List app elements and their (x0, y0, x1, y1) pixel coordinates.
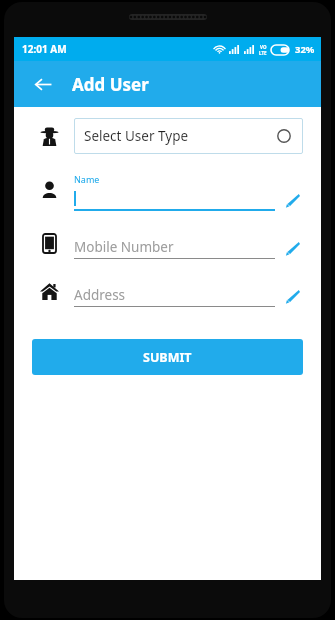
staticText: Add User (72, 73, 149, 96)
button[interactable]: Address (32, 273, 303, 307)
staticText: SUBMIT (143, 349, 192, 366)
button[interactable]: SUBMIT (32, 339, 303, 375)
staticText: LTE (259, 50, 267, 56)
button[interactable]: Back (26, 67, 60, 101)
button[interactable]: Edit mobile number (281, 237, 303, 259)
button[interactable]: Mobile Number (32, 225, 303, 259)
button[interactable]: Select User Type (32, 117, 303, 155)
staticText: Address (74, 286, 126, 304)
staticText: Mobile Number (74, 238, 174, 256)
staticText: VO (260, 44, 267, 50)
button[interactable]: Edit name (281, 189, 303, 211)
button[interactable]: Edit address (281, 285, 303, 307)
staticText: Select User Type (84, 127, 189, 145)
staticText: 12:01 AM (22, 42, 67, 56)
staticText: 32% (295, 43, 315, 56)
staticText: Name (74, 173, 100, 185)
button[interactable]: Name (32, 163, 303, 211)
